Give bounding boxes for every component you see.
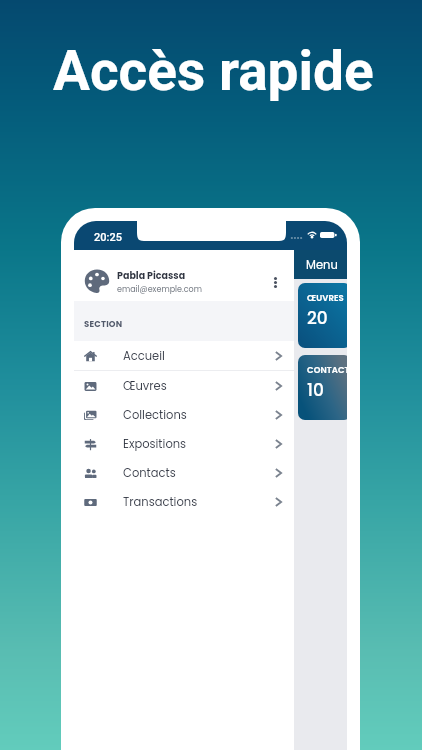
button[interactable]: Pabla Picassa <box>74 250 294 301</box>
staticText: 10 <box>307 378 324 402</box>
button[interactable]: Accueil <box>74 341 294 370</box>
button[interactable]: Menu <box>294 250 347 279</box>
staticText: Accès rapide <box>53 39 374 103</box>
button[interactable]: Contacts <box>74 458 294 487</box>
button[interactable]: Transactions <box>74 487 294 516</box>
button[interactable]: CONTACTS <box>298 355 347 420</box>
staticText: Menu <box>306 257 338 273</box>
staticText: Œuvres <box>123 378 275 394</box>
button[interactable]: Œuvres <box>74 371 294 400</box>
staticText: 20:25 <box>94 231 122 244</box>
staticText: ŒUVRES <box>307 292 344 304</box>
staticText: 20 <box>307 306 328 330</box>
staticText: Accueil <box>123 348 275 364</box>
button[interactable]: Collections <box>74 400 294 429</box>
staticText: Transactions <box>123 494 275 510</box>
button[interactable]: More options <box>264 271 286 293</box>
button[interactable]: ŒUVRES <box>298 283 347 348</box>
staticText: CONTACTS <box>307 364 347 376</box>
staticText: Collections <box>123 407 275 423</box>
staticText: Contacts <box>123 465 275 481</box>
staticText: Pabla Picassa <box>117 269 186 282</box>
staticText: SECTION <box>84 318 123 330</box>
staticText: email@exemple.com <box>117 284 202 295</box>
button[interactable]: Expositions <box>74 429 294 458</box>
staticText: Expositions <box>123 436 275 452</box>
